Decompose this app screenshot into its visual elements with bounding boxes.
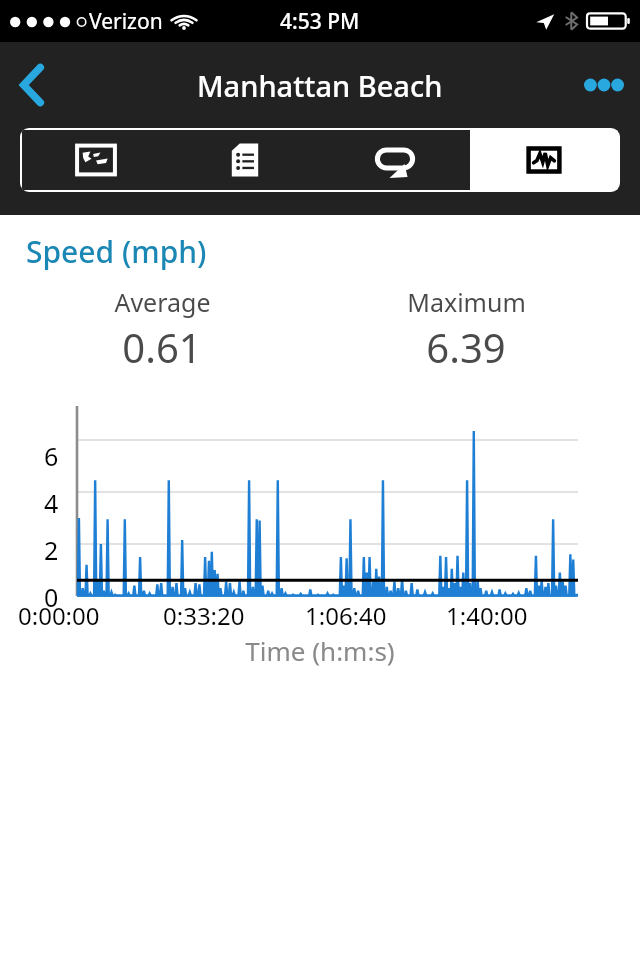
staticText: Average xyxy=(114,285,211,319)
button[interactable]: Graphs xyxy=(470,130,618,190)
staticText: Manhattan Beach xyxy=(197,66,443,105)
staticText: 4:53 PM xyxy=(280,7,360,36)
staticText: 0:33:20 xyxy=(163,599,245,632)
staticText: Speed (mph) xyxy=(26,231,207,272)
staticText: Verizon xyxy=(89,7,163,36)
staticText: 4 xyxy=(44,486,59,520)
button[interactable]: Laps xyxy=(320,130,470,190)
staticText: 0 xyxy=(44,580,59,614)
staticText: 6 xyxy=(44,439,59,473)
staticText: 2 xyxy=(44,533,59,567)
button[interactable]: Details xyxy=(170,130,320,190)
staticText: Maximum xyxy=(407,285,526,319)
staticText: Time (h:m:s) xyxy=(245,633,395,668)
button[interactable]: More options xyxy=(568,49,640,121)
staticText: 1:40:00 xyxy=(446,599,528,632)
staticText: 1:06:40 xyxy=(305,599,387,632)
staticText: 0.61 xyxy=(122,320,202,374)
staticText: 0:00:00 xyxy=(18,599,100,632)
button[interactable]: Back xyxy=(0,49,64,121)
button[interactable]: Map xyxy=(22,130,170,190)
staticText: 6.39 xyxy=(426,320,506,374)
